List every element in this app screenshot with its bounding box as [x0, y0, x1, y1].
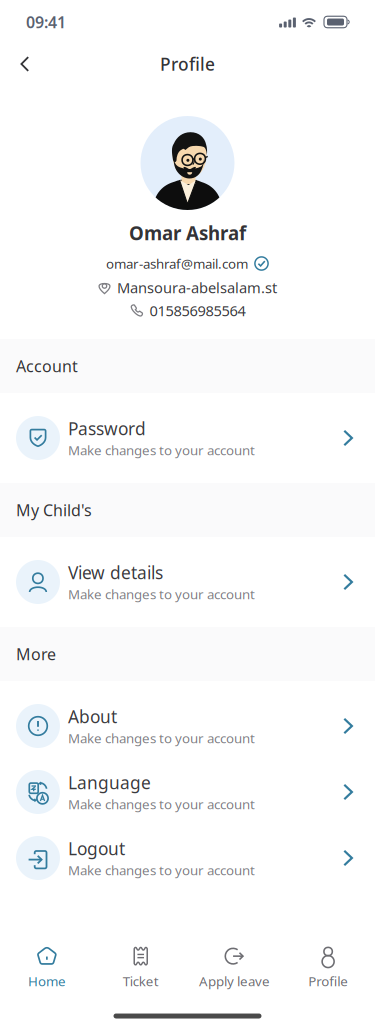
staticText: Apply leave [199, 972, 270, 990]
staticText: 015856985564 [149, 301, 245, 320]
staticText: Logout [68, 837, 125, 860]
button[interactable]: About [0, 693, 375, 759]
staticText: Make changes to your account [68, 795, 255, 813]
staticText: About [68, 705, 117, 728]
staticText: Make changes to your account [68, 441, 255, 459]
staticText: Home [28, 972, 66, 990]
button[interactable]: Logout [0, 825, 375, 891]
staticText: More [16, 643, 56, 665]
button[interactable]: View details [0, 549, 375, 615]
button[interactable]: Home [0, 940, 94, 996]
staticText: Mansoura-abelsalam.st [117, 278, 277, 297]
staticText: Ticket [123, 972, 159, 990]
staticText: Make changes to your account [68, 861, 255, 879]
staticText: Make changes to your account [68, 729, 255, 747]
button[interactable]: Apply leave [187, 940, 281, 996]
staticText: My Child's [16, 499, 92, 521]
button[interactable]: Password [0, 405, 375, 471]
button[interactable]: Back [9, 47, 41, 81]
staticText: omar-ashraf@mail.com [106, 255, 248, 272]
button[interactable]: Profile [281, 940, 375, 996]
staticText: Account [16, 355, 78, 377]
staticText: Make changes to your account [68, 585, 255, 603]
staticText: Password [68, 417, 146, 440]
staticText: 09:41 [26, 11, 66, 33]
staticText: Profile [160, 52, 215, 75]
button[interactable]: Language [0, 759, 375, 825]
staticText: Profile [308, 972, 348, 990]
staticText: Omar Ashraf [129, 221, 246, 245]
staticText: View details [68, 561, 163, 584]
staticText: Language [68, 771, 151, 794]
button[interactable]: Ticket [94, 940, 188, 996]
